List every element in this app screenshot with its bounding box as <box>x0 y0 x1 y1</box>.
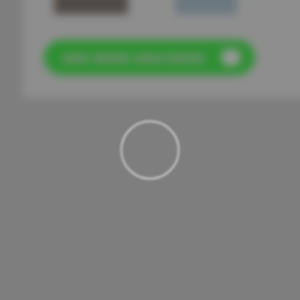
button[interactable]: ADD MORE GROCERIES <box>44 40 255 75</box>
other: Loading <box>115 115 185 185</box>
staticText: ADD MORE GROCERIES <box>62 50 206 66</box>
